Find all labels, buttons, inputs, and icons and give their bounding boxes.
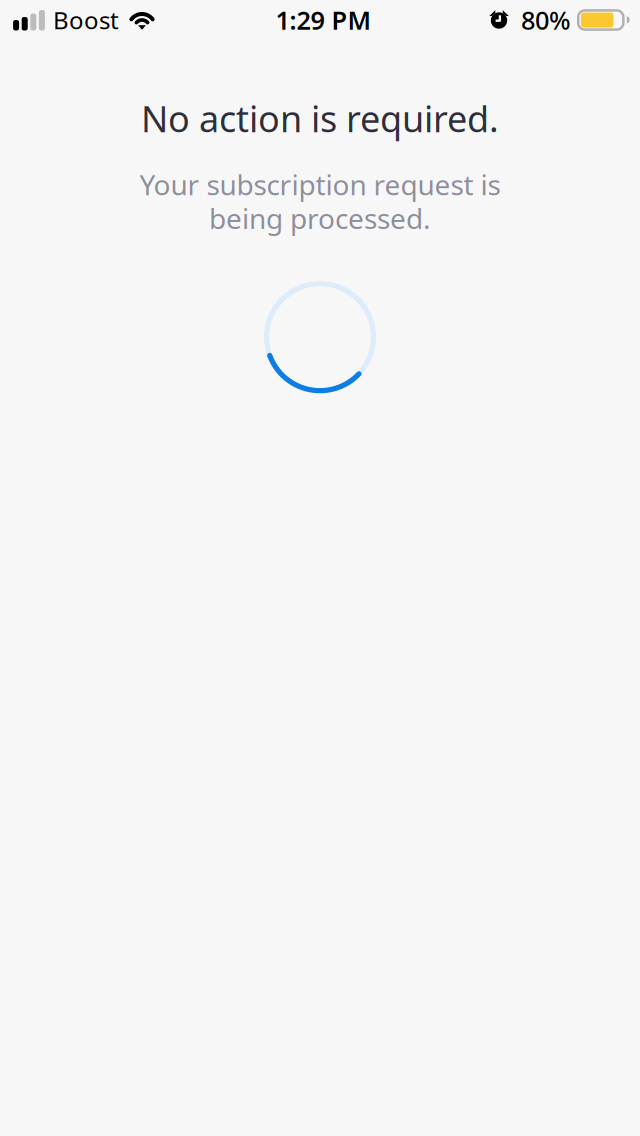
staticText: being processed. bbox=[209, 199, 431, 237]
staticText: Boost bbox=[53, 4, 119, 36]
staticText: 80% bbox=[521, 3, 571, 37]
staticText: Your subscription request is bbox=[139, 166, 500, 203]
staticText: 1:29 PM bbox=[275, 3, 371, 37]
staticText: No action is required. bbox=[141, 94, 499, 142]
